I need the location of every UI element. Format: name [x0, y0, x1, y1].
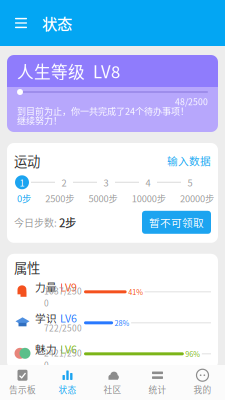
staticText: 1037/2500: [44, 285, 82, 309]
staticText: 魅力: [35, 341, 57, 356]
staticText: LV6: [60, 310, 77, 325]
staticText: 我的: [193, 383, 211, 396]
staticText: 1: [19, 175, 24, 189]
button[interactable]: 告示板: [0, 365, 45, 400]
staticText: 4: [145, 175, 150, 189]
staticText: 28%: [115, 317, 130, 328]
staticText: 722/2500: [44, 322, 82, 334]
staticText: 2500步: [45, 191, 74, 205]
button[interactable]: 菜单: [6, 8, 36, 38]
staticText: 2421/2500: [44, 347, 82, 371]
staticText: 输入数据: [167, 153, 211, 168]
staticText: 96%: [185, 348, 200, 359]
button[interactable]: 输入数据: [167, 153, 211, 168]
staticText: 学识: [35, 310, 57, 325]
staticText: 10000步: [132, 191, 166, 205]
button[interactable]: 状态: [45, 365, 90, 400]
staticText: 2: [61, 175, 66, 189]
button[interactable]: 社区: [90, 365, 135, 400]
staticText: 20000步: [180, 191, 214, 205]
staticText: LV9: [60, 279, 77, 294]
staticText: 今日步数:: [14, 215, 59, 230]
staticText: 告示板: [9, 383, 36, 396]
staticText: 到目前为止，你一共完成了24个待办事项！: [17, 104, 189, 117]
staticText: LV6: [60, 341, 77, 356]
staticText: 力量: [35, 279, 57, 294]
staticText: 41%: [128, 286, 143, 297]
staticText: 属性: [14, 258, 40, 277]
staticText: 5: [187, 175, 192, 189]
staticText: 社区: [103, 383, 121, 396]
staticText: 运动: [14, 151, 40, 170]
staticText: 3: [103, 175, 108, 189]
staticText: 暂不可领取: [149, 215, 204, 230]
staticText: 统计: [148, 383, 166, 396]
staticText: 2步: [59, 214, 76, 230]
staticText: 继续努力！: [17, 114, 62, 127]
staticText: 5000步: [88, 191, 117, 205]
button[interactable]: 我的: [180, 365, 225, 400]
staticText: 状态: [42, 12, 72, 34]
button[interactable]: 暂不可领取: [142, 211, 211, 234]
button[interactable]: 统计: [135, 365, 180, 400]
staticText: 人生等级 LV8: [17, 59, 120, 83]
staticText: 0步: [17, 191, 31, 205]
staticText: 状态: [58, 383, 76, 396]
staticText: 48/2500: [175, 95, 208, 108]
